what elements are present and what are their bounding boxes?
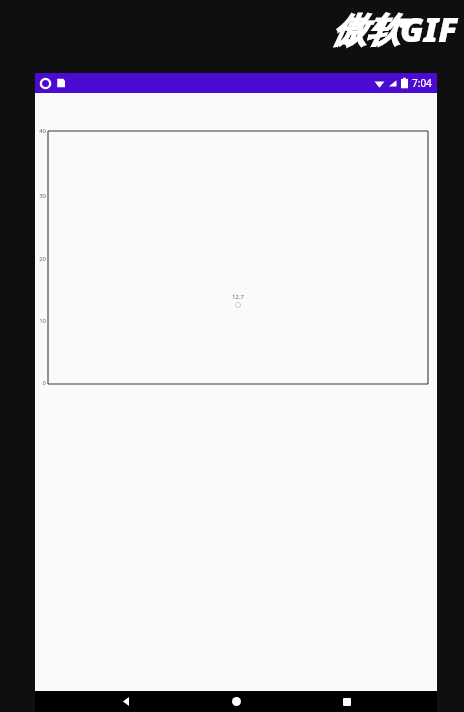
staticText: 7:04 [412, 76, 432, 90]
staticText: 30 [39, 192, 46, 200]
staticText: 0 [42, 379, 46, 387]
button[interactable]: Recent apps [327, 691, 367, 712]
button[interactable]: Back [106, 691, 146, 712]
staticText: 傲软GIF [332, 6, 458, 52]
staticText: 40 [39, 127, 46, 135]
staticText: 20 [39, 255, 46, 263]
staticText: 10 [39, 317, 46, 325]
button[interactable]: Home [216, 691, 256, 712]
staticText: 12.7 [232, 293, 244, 301]
